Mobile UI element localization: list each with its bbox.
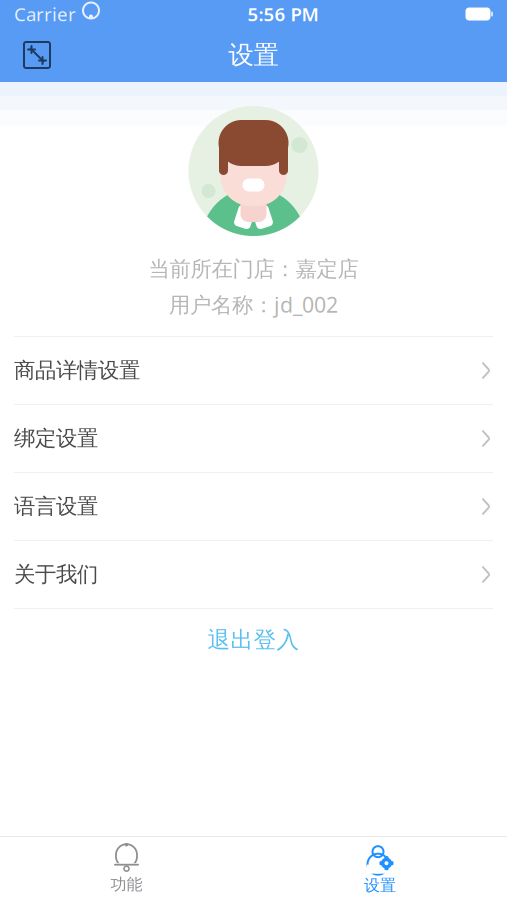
staticText: 功能 [110,875,142,894]
staticText: 设置 [364,876,396,895]
staticText: Carrier [14,2,76,26]
button[interactable]: 退出登入 [0,609,507,671]
button[interactable]: 功能 [0,837,253,899]
button[interactable]: 绑定设置 [0,405,507,473]
staticText: 语言设置 [14,493,98,520]
staticText: 当前所在门店：嘉定店 [148,256,358,282]
staticText: 商品详情设置 [14,357,140,384]
button[interactable]: 设置 [253,837,507,899]
staticText: 退出登入 [207,626,299,654]
staticText: 设置 [228,39,278,70]
button[interactable]: 关于我们 [0,541,507,609]
staticText: 5:56 PM [247,2,318,26]
button[interactable]: 全屏 [14,32,60,78]
staticText: 关于我们 [14,561,98,588]
button[interactable]: 商品详情设置 [0,337,507,405]
staticText: 绑定设置 [14,425,98,452]
staticText: 用户名称：jd_002 [169,290,338,318]
button[interactable]: 语言设置 [0,473,507,541]
